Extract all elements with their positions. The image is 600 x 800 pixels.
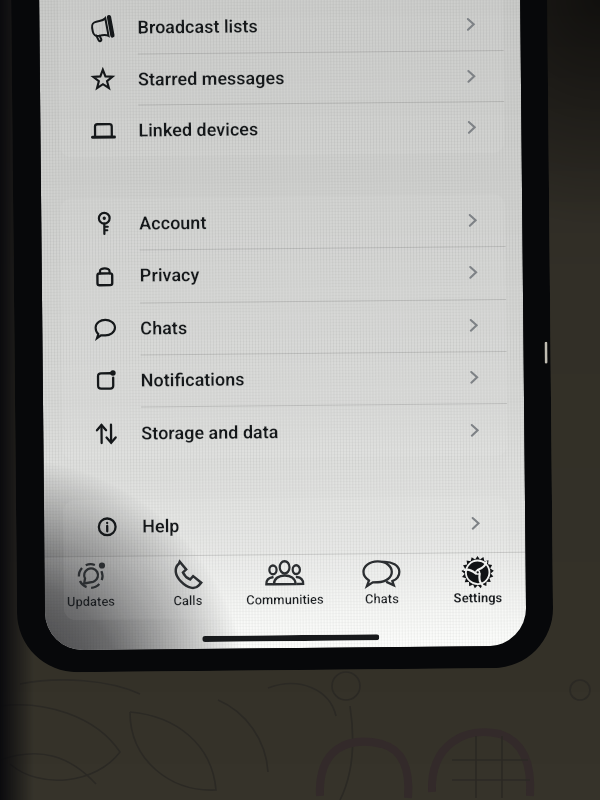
button[interactable]: Linked devices xyxy=(59,101,505,157)
staticText: Starred messages xyxy=(138,67,285,89)
button[interactable]: Help xyxy=(63,497,508,553)
staticText: Chats xyxy=(334,591,430,610)
staticText: Settings xyxy=(430,590,526,609)
button[interactable]: Updates xyxy=(44,556,139,650)
staticText: Notifications xyxy=(141,368,245,390)
button[interactable]: Chats xyxy=(61,299,507,355)
button[interactable]: Account xyxy=(60,194,506,250)
button[interactable]: Chats xyxy=(333,553,430,648)
staticText: Chats xyxy=(140,317,187,339)
button[interactable]: Storage and data xyxy=(62,404,508,460)
staticText: Communities xyxy=(237,592,333,611)
staticText: Account xyxy=(139,212,207,234)
staticText: Help xyxy=(142,515,180,537)
staticText: Linked devices xyxy=(138,118,258,141)
staticText: Updates xyxy=(45,594,139,612)
staticText: Storage and data xyxy=(141,421,279,443)
button[interactable]: Privacy xyxy=(61,246,506,302)
button[interactable]: Broadcast lists xyxy=(58,0,504,54)
staticText: Broadcast lists xyxy=(137,15,258,38)
button[interactable]: Calls xyxy=(139,555,236,649)
button[interactable]: Settings xyxy=(429,552,526,647)
button[interactable]: Starred messages xyxy=(59,50,504,106)
staticText: Privacy xyxy=(140,264,200,286)
staticText: Calls xyxy=(140,593,236,611)
button[interactable]: Notifications xyxy=(62,351,507,407)
button[interactable]: Communities xyxy=(236,554,333,649)
